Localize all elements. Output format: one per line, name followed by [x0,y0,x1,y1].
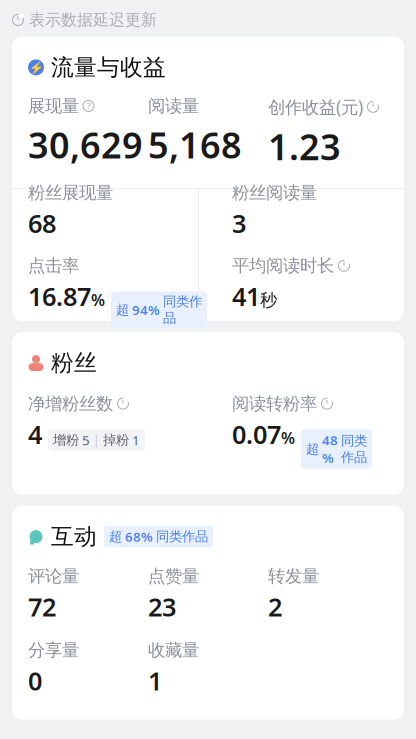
staticText: 评论量 [28,566,79,587]
staticText: 68 [28,206,56,240]
staticText: 表示数据延迟更新 [29,10,157,30]
staticText: 1 [132,431,140,449]
staticText: 68% [125,528,153,545]
staticText: 超 [306,441,319,457]
staticText: % [281,427,295,448]
staticText: 41 [232,279,260,313]
staticText: 阅读转粉率 [232,393,317,414]
staticText: 48% [322,431,338,467]
staticText: 互动 [51,523,97,550]
staticText: 粉丝展现量 [28,182,113,203]
staticText: 点击率 [28,255,79,276]
staticText: 0.07 [232,417,281,451]
staticText: 创作收益(元) [268,95,363,118]
staticText: 23 [148,590,176,623]
staticText: 展现量 [28,95,79,117]
staticText: 分享量 [28,639,79,661]
staticText: 平均阅读时长 [232,255,334,276]
staticText: 点赞量 [148,566,199,587]
staticText: 4 [28,417,42,451]
staticText: 2 [268,590,282,623]
staticText: 流量与收益 [51,53,166,81]
staticText: 转发量 [268,566,319,587]
staticText: 净增粉丝数 [28,393,113,414]
staticText: 3 [232,206,246,240]
staticText: % [91,289,105,310]
staticText: 收藏量 [148,639,199,661]
staticText: 94% [132,301,160,319]
staticText: 30,629 [28,121,143,168]
staticText: 粉丝 [51,349,97,377]
staticText: ⚡ [28,60,43,74]
staticText: 增粉 [53,432,79,448]
staticText: 16.87 [28,279,91,313]
staticText: 72 [28,590,56,623]
staticText: 1.23 [268,122,341,170]
staticText: 同类作品 [163,293,202,326]
staticText: 秒 [260,290,277,311]
staticText: | [93,432,100,448]
staticText: 粉丝阅读量 [232,182,317,203]
staticText: 超 [109,528,122,545]
staticText: 5 [82,431,90,449]
staticText: 掉粉 [103,432,129,448]
staticText: 0 [28,664,42,697]
staticText: 超 [116,302,129,318]
staticText: ? [86,100,90,112]
staticText: 1 [148,664,162,697]
staticText: 同类作品 [341,433,367,465]
staticText: 同类作品 [156,528,208,545]
staticText: 5,168 [148,121,242,168]
staticText: 阅读量 [148,95,199,117]
